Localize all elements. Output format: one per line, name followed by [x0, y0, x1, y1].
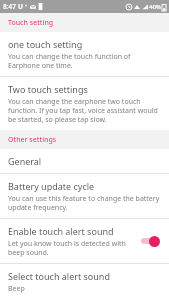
staticText: Other settings — [8, 135, 57, 145]
staticText: You can change the earphone two touch fu… — [8, 97, 161, 124]
staticText: one touch setting — [8, 38, 83, 50]
staticText: Battery update cycle — [8, 180, 95, 192]
staticText: Let you know touch is detected with beep… — [8, 239, 133, 257]
staticText: Beep — [8, 284, 25, 294]
staticText: 8:47 — [3, 2, 16, 11]
button[interactable]: Two touch settings — [0, 77, 169, 130]
button[interactable]: one touch setting — [0, 32, 169, 76]
staticText: Two touch settings — [8, 83, 88, 95]
staticText: U — [18, 2, 23, 11]
staticText: Enable touch alert sound — [8, 225, 114, 237]
staticText: 40% — [149, 3, 161, 11]
staticText: You can use this feature to change the b… — [8, 194, 161, 212]
staticText: Touch setting — [8, 18, 54, 28]
button[interactable]: Toggle on — [139, 235, 161, 247]
button[interactable]: General — [0, 149, 169, 173]
button[interactable]: Enable touch alert sound — [0, 219, 169, 263]
staticText: Select touch alert sound — [8, 270, 110, 282]
button[interactable]: Select touch alert sound — [0, 264, 169, 300]
staticText: You can change the touch function of Ear… — [8, 52, 161, 70]
button[interactable]: Battery update cycle — [0, 174, 169, 218]
staticText: General — [8, 155, 42, 167]
